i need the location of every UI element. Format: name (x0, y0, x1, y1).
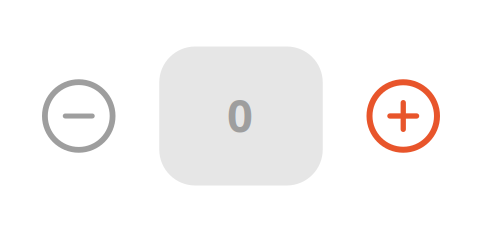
button[interactable]: Increase quantity (366, 79, 440, 153)
button[interactable]: 0 (159, 46, 323, 185)
staticText: 0 (227, 85, 253, 145)
button[interactable]: Decrease quantity (42, 79, 115, 153)
